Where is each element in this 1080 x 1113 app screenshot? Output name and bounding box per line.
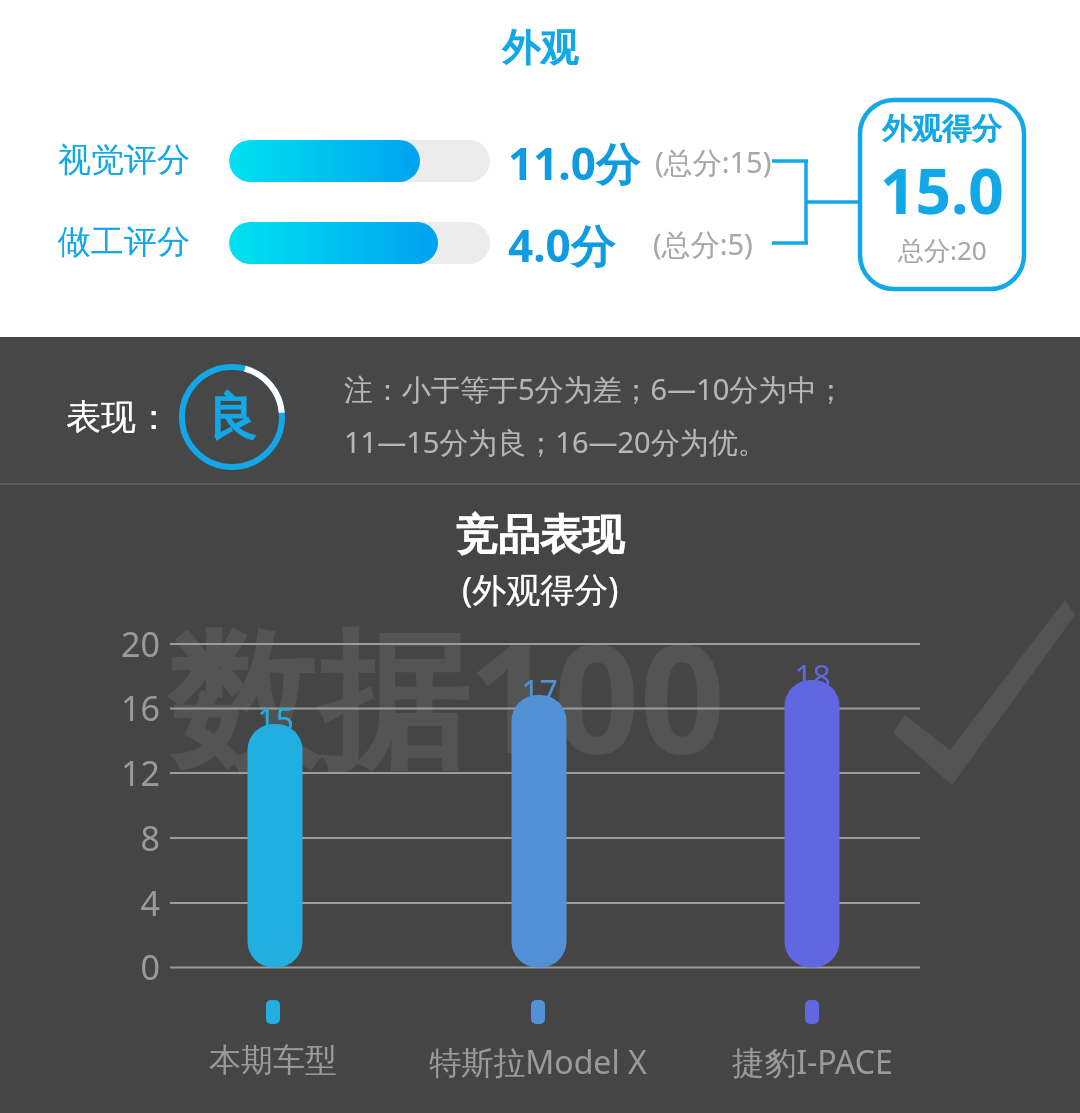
staticText: 15 <box>257 698 294 742</box>
button[interactable]: 评级：良 <box>179 364 285 470</box>
staticText: 视觉评分 <box>58 139 190 181</box>
staticText: 18 <box>794 655 831 699</box>
staticText: (总分:5) <box>653 224 753 264</box>
staticText: 捷豹I-PACE <box>732 1040 893 1084</box>
staticText: (外观得分) <box>462 566 619 612</box>
staticText: 表现： <box>66 395 171 439</box>
staticText: 4.0分 <box>508 215 615 275</box>
button[interactable]: 外观 <box>502 24 578 72</box>
staticText: 15.0 <box>880 148 1004 232</box>
staticText: 良 <box>207 386 257 449</box>
staticText: 注：小于等于5分为差；6—10分为中； <box>344 369 846 409</box>
staticText: 11.0分 <box>508 133 640 193</box>
staticText: 本期车型 <box>209 1040 337 1080</box>
staticText: 16 <box>121 685 160 731</box>
staticText: 11—15分为良；16—20分为优。 <box>344 422 767 462</box>
staticText: 17 <box>521 670 558 714</box>
staticText: 12 <box>121 750 160 796</box>
staticText: 20 <box>121 621 160 667</box>
button[interactable]: 外观得分 <box>858 98 1026 291</box>
staticText: 做工评分 <box>58 221 190 263</box>
button[interactable] <box>229 222 490 264</box>
button[interactable] <box>229 140 490 182</box>
staticText: 数据100 <box>168 593 726 798</box>
staticText: 竞品表现 <box>456 509 624 562</box>
staticText: 0 <box>140 944 160 990</box>
staticText: 8 <box>140 815 160 861</box>
button[interactable]: 本期车型 <box>143 1000 403 1080</box>
staticText: 4 <box>140 880 160 926</box>
button[interactable]: 特斯拉Model X <box>408 1000 668 1084</box>
staticText: 外观得分 <box>882 110 1002 148</box>
button[interactable]: 捷豹I-PACE <box>682 1000 942 1084</box>
staticText: 特斯拉Model X <box>429 1040 647 1084</box>
staticText: (总分:15) <box>655 142 772 182</box>
staticText: 总分:20 <box>898 232 987 268</box>
